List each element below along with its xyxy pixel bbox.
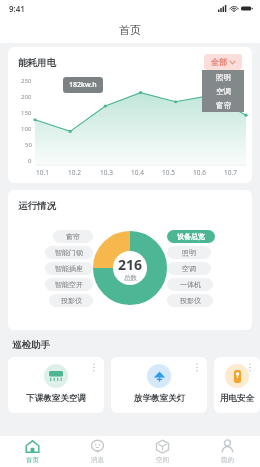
staticText: 空调 (216, 87, 231, 96)
staticText: 216 (118, 255, 143, 274)
staticText: 用电安全 (220, 393, 254, 404)
button[interactable]: More options (192, 362, 202, 372)
staticText: 投影仪 (61, 296, 82, 305)
button[interactable]: 设备总览 (167, 230, 215, 243)
button[interactable]: 下课教室关空调 (8, 357, 104, 413)
button[interactable]: 消息 (65, 436, 130, 467)
staticText: 空间 (156, 456, 169, 464)
staticText: 我的 (221, 456, 234, 464)
button[interactable]: 空调 (202, 84, 244, 98)
staticText: 照明 (216, 73, 231, 82)
staticText: 智能插座 (55, 264, 83, 273)
button[interactable]: 全部 (204, 54, 242, 70)
button[interactable]: 窗帘 (202, 98, 244, 112)
button[interactable]: More options (89, 362, 99, 372)
staticText: 100 (21, 125, 32, 133)
staticText: 10.4 (131, 168, 144, 177)
staticText: 200 (21, 93, 32, 101)
staticText: 10.5 (162, 168, 175, 177)
staticText: 窗帘 (216, 101, 231, 110)
staticText: 消息 (91, 456, 104, 464)
button[interactable]: 照明 (202, 70, 244, 84)
staticText: 投影仪 (180, 296, 201, 305)
button[interactable]: 投影仪 (49, 294, 93, 307)
button[interactable]: 我的 (195, 436, 260, 467)
staticText: 设备总览 (177, 232, 205, 241)
staticText: 10.6 (193, 168, 206, 177)
staticText: 总数 (124, 274, 137, 282)
staticText: 窗帘 (66, 232, 80, 241)
button[interactable]: 用电安全 (214, 357, 260, 413)
button[interactable]: 窗帘 (53, 230, 93, 243)
staticText: 智能门锁 (55, 248, 83, 257)
staticText: 10.7 (224, 168, 237, 177)
staticText: 首页 (119, 23, 141, 37)
staticText: 全部 (211, 57, 227, 67)
button[interactable]: 一体机 (167, 278, 213, 291)
button[interactable]: 空间 (130, 436, 195, 467)
staticText: 照明 (182, 248, 196, 257)
staticText: 巡检助手 (12, 339, 50, 351)
button[interactable]: 智能门锁 (45, 246, 93, 259)
staticText: 150 (21, 109, 32, 117)
staticText: 250 (21, 77, 32, 85)
button[interactable]: 智能空开 (45, 278, 93, 291)
staticText: 10.1 (36, 168, 49, 177)
staticText: 10.2 (68, 168, 81, 177)
button[interactable]: 放学教室关灯 (111, 357, 207, 413)
staticText: 空调 (182, 264, 196, 273)
staticText: 9:41 (9, 3, 25, 14)
button[interactable]: 投影仪 (167, 294, 213, 307)
staticText: 182kw.h (69, 80, 97, 90)
staticText: 一体机 (180, 280, 201, 289)
button[interactable]: 空调 (167, 262, 211, 275)
button[interactable]: 智能插座 (45, 262, 93, 275)
staticText: 运行情况 (18, 200, 56, 212)
staticText: 首页 (26, 456, 39, 464)
staticText: 能耗用电 (18, 57, 56, 69)
staticText: 0 (28, 157, 32, 165)
staticText: 下课教室关空调 (26, 393, 86, 404)
button[interactable]: 首页 (0, 436, 65, 467)
staticText: 智能空开 (55, 280, 83, 289)
button[interactable]: More options (245, 362, 255, 372)
button[interactable]: 照明 (167, 246, 211, 259)
staticText: 50 (25, 141, 32, 149)
staticText: 10.3 (100, 168, 113, 177)
staticText: 放学教室关灯 (134, 393, 185, 404)
